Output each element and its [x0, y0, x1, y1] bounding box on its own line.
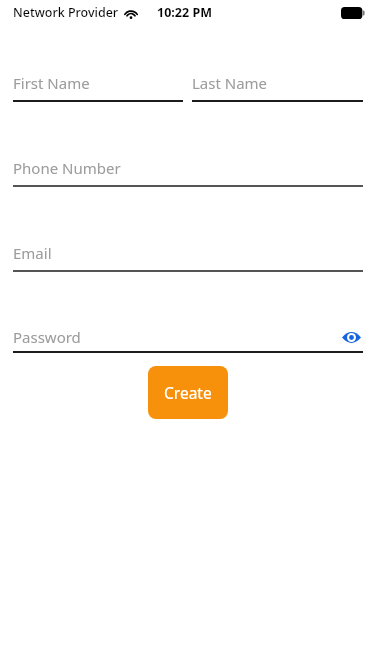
staticText: First Name — [13, 73, 90, 93]
button[interactable]: Password — [13, 327, 340, 347]
button[interactable]: Last Name — [192, 73, 363, 102]
staticText: Create — [164, 382, 212, 403]
staticText: Email — [13, 243, 52, 263]
button[interactable]: Create — [148, 366, 228, 419]
button[interactable]: Show password — [340, 328, 363, 347]
button[interactable]: Phone Number — [13, 158, 363, 187]
staticText: Network Provider — [13, 4, 119, 21]
button[interactable]: First Name — [13, 73, 183, 102]
staticText: Last Name — [192, 73, 268, 93]
staticText: Phone Number — [13, 158, 121, 178]
staticText: 10:22 PM — [157, 4, 212, 21]
button[interactable]: Email — [13, 243, 363, 272]
staticText: Password — [13, 327, 81, 347]
